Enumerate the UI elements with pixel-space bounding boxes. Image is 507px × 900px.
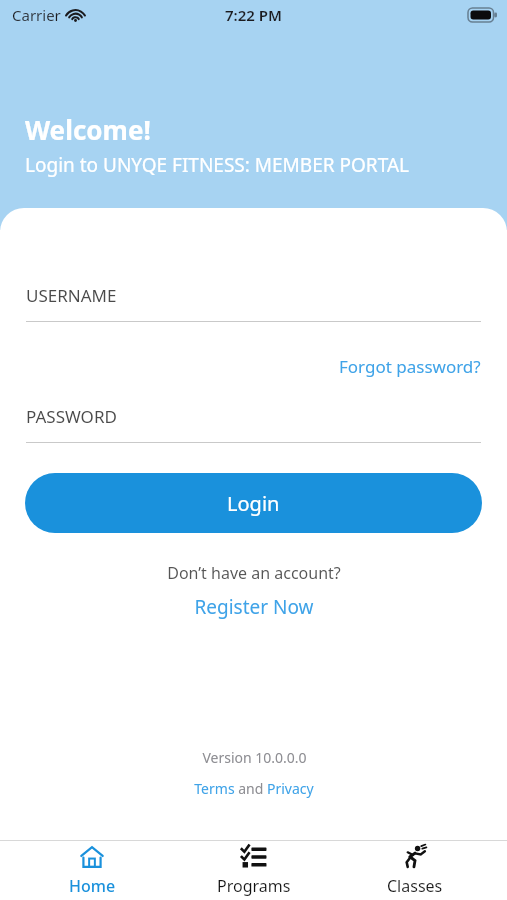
button[interactable]: Terms and Privacy (194, 779, 314, 798)
staticText: Login to UNYQE FITNESS: MEMBER PORTAL (25, 152, 410, 178)
staticText: Home (69, 875, 116, 897)
staticText: Terms and Privacy (194, 779, 314, 798)
staticText: Carrier (12, 5, 61, 25)
staticText: Classes (387, 875, 443, 897)
staticText: Version 10.0.0.0 (202, 748, 307, 767)
button[interactable]: Register Now (194, 594, 314, 620)
button[interactable]: Home (22, 841, 162, 900)
button[interactable]: Forgot password? (339, 355, 481, 378)
staticText: Don’t have an account? (167, 562, 341, 584)
staticText: USERNAME (26, 284, 117, 307)
staticText: PASSWORD (26, 405, 117, 428)
button[interactable]: PASSWORD (26, 405, 481, 443)
button[interactable]: Programs (184, 841, 324, 900)
staticText: Programs (217, 875, 291, 897)
staticText: Forgot password? (339, 355, 481, 378)
staticText: Login (227, 490, 280, 517)
staticText: Register Now (194, 594, 314, 620)
button[interactable]: Login (25, 473, 482, 533)
button[interactable]: USERNAME (26, 284, 481, 322)
staticText: Welcome! (25, 112, 151, 147)
staticText: 7:22 PM (225, 5, 282, 25)
button[interactable]: Classes (345, 841, 485, 900)
